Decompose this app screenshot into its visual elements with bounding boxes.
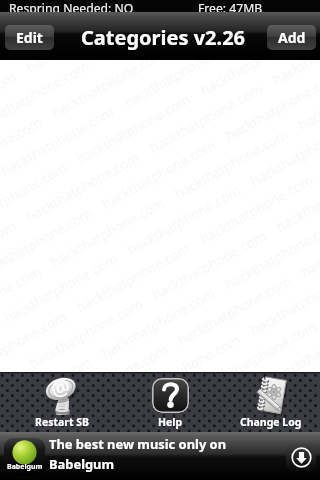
button[interactable]: Help xyxy=(120,372,220,432)
button[interactable]: Change Log xyxy=(221,372,320,432)
staticText: Edit xyxy=(16,28,43,47)
staticText: The best new music only on xyxy=(49,435,227,453)
staticText: Add xyxy=(278,28,306,47)
button[interactable]: Babelgum xyxy=(0,432,320,480)
staticText: Change Log xyxy=(240,415,302,429)
staticText: Respring Needed: NO xyxy=(9,0,134,12)
staticText: Categories v2.26 xyxy=(81,24,246,51)
staticText: Babelgum xyxy=(7,462,43,472)
button[interactable]: Edit xyxy=(5,25,54,50)
staticText: Restart SB xyxy=(35,415,90,429)
button[interactable]: Restart SB xyxy=(12,372,112,432)
staticText: Babelgum xyxy=(49,455,115,473)
staticText: Free: 47MB xyxy=(198,0,263,12)
button[interactable]: Download xyxy=(286,443,316,472)
button[interactable]: Add xyxy=(267,25,316,50)
staticText: Help xyxy=(158,415,183,429)
